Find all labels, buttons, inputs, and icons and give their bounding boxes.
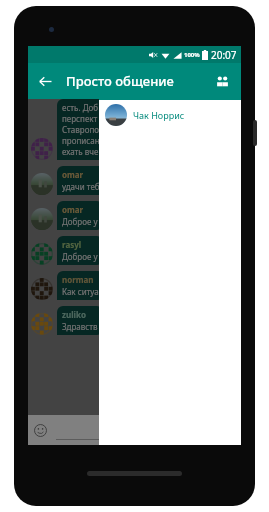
staticText: ехать вче — [62, 146, 99, 157]
staticText: omar — [62, 169, 84, 180]
staticText: omar — [62, 204, 84, 215]
staticText: zuliko — [62, 309, 86, 320]
staticText: Чак Норрис — [133, 109, 185, 121]
staticText: Здравств — [62, 321, 98, 332]
staticText: Просто общение — [66, 72, 174, 90]
button[interactable]: omar — [28, 166, 241, 195]
staticText: 20:07 — [211, 48, 237, 62]
staticText: прописан — [62, 135, 100, 146]
staticText: Ставропо — [62, 124, 100, 135]
staticText: Доброе у — [62, 251, 98, 262]
staticText: есть. Доб — [62, 102, 99, 113]
button[interactable] — [56, 420, 235, 440]
button[interactable]: omar — [28, 201, 241, 230]
button[interactable]: zuliko — [28, 306, 241, 335]
button[interactable]: есть. Доб — [28, 99, 241, 160]
button[interactable]: Back — [28, 64, 62, 98]
staticText: norman — [62, 274, 94, 285]
button[interactable]: rasyl — [28, 236, 241, 265]
staticText: Как ситуа — [62, 286, 99, 297]
staticText: Доброе у — [62, 216, 98, 227]
staticText: удачи теб — [62, 181, 100, 192]
staticText: rasyl — [62, 239, 82, 250]
button[interactable]: Emoji — [28, 418, 52, 442]
staticText: 100% — [184, 51, 200, 59]
button[interactable]: Чак Норрис — [99, 99, 241, 131]
staticText: перспект — [62, 113, 98, 124]
button[interactable]: Group members — [205, 64, 239, 98]
button[interactable]: norman — [28, 271, 241, 300]
